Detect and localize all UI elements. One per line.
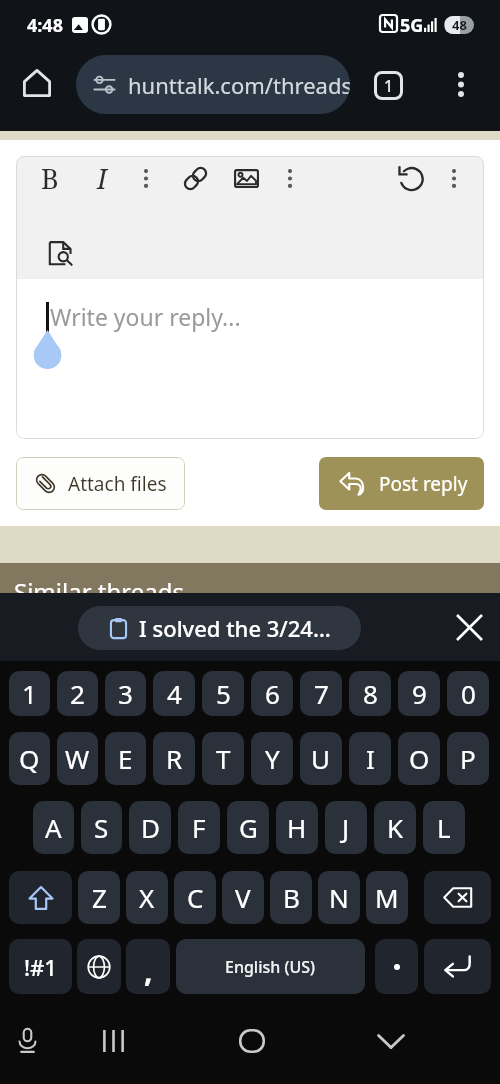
staticText: 1 bbox=[22, 676, 37, 711]
button[interactable]: Shift bbox=[9, 871, 72, 924]
staticText: hunttalk.com/threads bbox=[128, 70, 350, 100]
staticText: C bbox=[187, 880, 204, 915]
staticText: I solved the 3/24… bbox=[139, 613, 331, 643]
staticText: Post reply bbox=[379, 471, 468, 497]
button[interactable]: A bbox=[33, 801, 74, 854]
button[interactable]: W bbox=[57, 732, 98, 785]
staticText: X bbox=[139, 880, 155, 915]
staticText: , bbox=[144, 950, 153, 991]
staticText: T bbox=[216, 741, 231, 776]
staticText: Similar threads bbox=[14, 575, 184, 608]
staticText: N bbox=[329, 880, 349, 915]
button[interactable]: hunttalk.com/threads bbox=[76, 55, 350, 114]
staticText: J bbox=[342, 810, 350, 845]
staticText: 0 bbox=[461, 676, 476, 711]
staticText: H bbox=[287, 810, 307, 845]
staticText: F bbox=[192, 810, 206, 845]
staticText: B bbox=[41, 160, 59, 197]
button[interactable]: D bbox=[129, 801, 171, 854]
button[interactable]: Backspace bbox=[424, 871, 491, 924]
staticText: K bbox=[387, 810, 404, 845]
staticText: O bbox=[409, 741, 430, 776]
button[interactable]: Preview bbox=[39, 231, 83, 275]
staticText: U bbox=[311, 741, 331, 776]
button[interactable]: H bbox=[276, 801, 318, 854]
button[interactable]: 0 bbox=[447, 671, 489, 716]
button[interactable]: Italic bbox=[80, 156, 124, 200]
button[interactable]: N bbox=[318, 871, 360, 924]
button[interactable]: 7 bbox=[300, 671, 342, 716]
button[interactable]: !#1 bbox=[9, 939, 72, 994]
button[interactable]: 3 bbox=[105, 671, 146, 716]
button[interactable]: Post reply bbox=[319, 457, 484, 510]
button[interactable]: B bbox=[270, 871, 312, 924]
button[interactable]: Close suggestion bbox=[445, 603, 493, 651]
button[interactable]: X bbox=[126, 871, 168, 924]
button[interactable]: More options bbox=[432, 156, 476, 200]
button[interactable]: Y bbox=[251, 732, 293, 785]
button[interactable]: Insert image bbox=[224, 156, 268, 200]
button[interactable]: , bbox=[126, 939, 170, 994]
button[interactable]: Bold bbox=[28, 156, 72, 200]
button[interactable]: Change language bbox=[77, 939, 121, 994]
staticText: 5G bbox=[400, 13, 424, 38]
button[interactable]: K bbox=[374, 801, 416, 854]
button[interactable]: More insert options bbox=[268, 156, 312, 200]
button[interactable]: V bbox=[222, 871, 264, 924]
staticText: R bbox=[166, 741, 183, 776]
button[interactable]: U bbox=[300, 732, 342, 785]
staticText: !#1 bbox=[24, 952, 57, 982]
staticText: E bbox=[118, 741, 133, 776]
button[interactable]: P bbox=[447, 732, 489, 785]
button[interactable]: C bbox=[174, 871, 216, 924]
button[interactable]: More options bbox=[439, 62, 483, 106]
button[interactable]: 4 bbox=[153, 671, 195, 716]
button[interactable]: 8 bbox=[349, 671, 391, 716]
button[interactable]: Recents bbox=[89, 1017, 137, 1065]
staticText: Y bbox=[265, 741, 280, 776]
staticText: P bbox=[460, 741, 476, 776]
button[interactable]: G bbox=[227, 801, 269, 854]
staticText: Q bbox=[19, 741, 40, 776]
staticText: Z bbox=[92, 880, 107, 915]
button[interactable]: J bbox=[325, 801, 367, 854]
button[interactable]: Insert link bbox=[173, 156, 217, 200]
button[interactable]: 2 bbox=[57, 671, 98, 716]
button[interactable]: Undo bbox=[388, 156, 432, 200]
button[interactable] bbox=[375, 939, 418, 994]
staticText: S bbox=[94, 810, 109, 845]
staticText: I bbox=[366, 741, 375, 776]
staticText: W bbox=[65, 741, 90, 776]
button[interactable]: Attach files bbox=[16, 457, 185, 510]
staticText: English (US) bbox=[225, 956, 316, 978]
button[interactable]: Home bbox=[11, 57, 63, 109]
staticText: Write your reply... bbox=[50, 301, 241, 332]
button[interactable]: 6 bbox=[251, 671, 293, 716]
button[interactable]: S bbox=[81, 801, 122, 854]
button[interactable]: More text options bbox=[124, 156, 168, 200]
button[interactable]: I solved the 3/24… bbox=[78, 606, 361, 650]
staticText: 1 bbox=[384, 75, 394, 97]
button[interactable]: R bbox=[153, 732, 195, 785]
button[interactable]: Z bbox=[78, 871, 120, 924]
staticText: 6 bbox=[265, 676, 280, 711]
button[interactable]: 1 bbox=[9, 671, 50, 716]
button[interactable]: L bbox=[423, 801, 465, 854]
button[interactable]: Q bbox=[9, 732, 50, 785]
button[interactable]: F bbox=[178, 801, 220, 854]
button[interactable]: 9 bbox=[398, 671, 440, 716]
button[interactable]: Tabs bbox=[365, 62, 411, 108]
staticText: 3 bbox=[118, 676, 133, 711]
button[interactable]: I bbox=[349, 732, 391, 785]
button[interactable]: Enter bbox=[424, 939, 491, 994]
button[interactable]: E bbox=[105, 732, 146, 785]
button[interactable]: Hide keyboard bbox=[367, 1017, 415, 1065]
button[interactable]: Voice input bbox=[3, 1017, 51, 1065]
button[interactable]: English (US) bbox=[176, 939, 365, 994]
button[interactable]: O bbox=[398, 732, 440, 785]
staticText: Attach files bbox=[68, 471, 167, 497]
button[interactable]: T bbox=[202, 732, 244, 785]
button[interactable]: Home bbox=[228, 1017, 276, 1065]
button[interactable]: M bbox=[366, 871, 408, 924]
button[interactable]: 5 bbox=[202, 671, 244, 716]
